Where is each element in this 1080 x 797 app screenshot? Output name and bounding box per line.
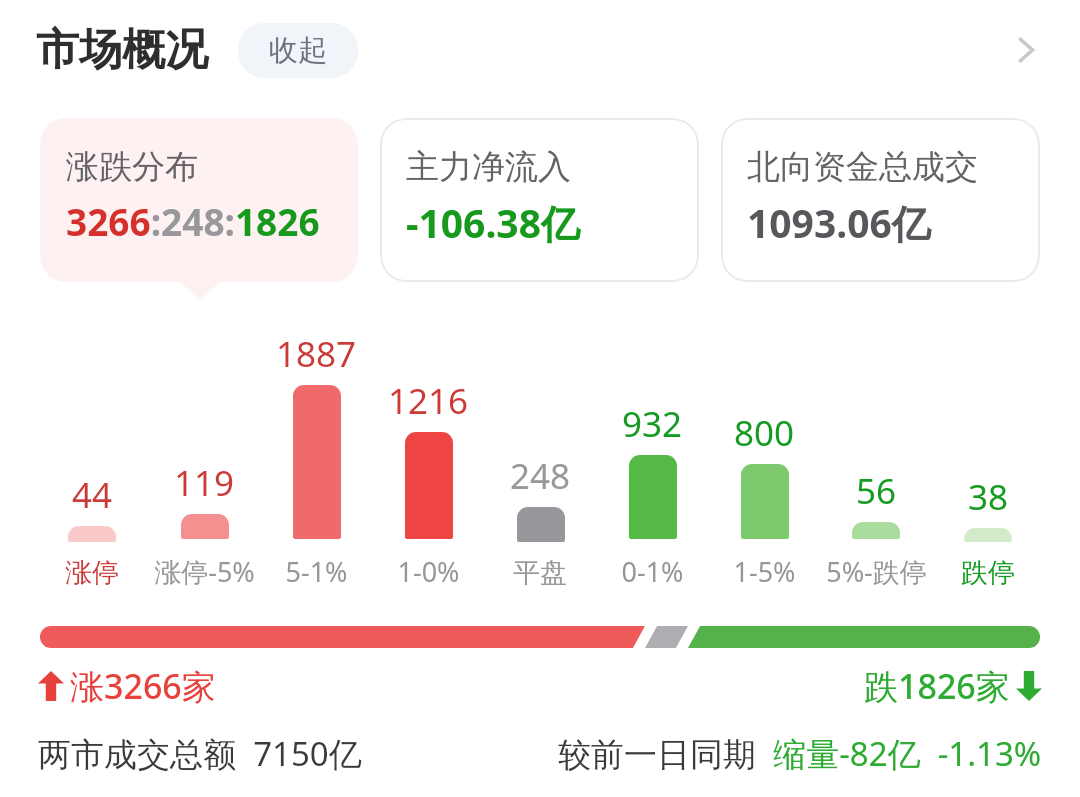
staticText: -106.38亿 — [406, 196, 580, 249]
staticText: 两市成交总额 7150亿 — [38, 731, 362, 776]
staticText: 跌停 — [961, 556, 1015, 590]
staticText: 1-5% — [733, 553, 796, 590]
staticText: 44 — [72, 471, 113, 519]
staticText: 市场概况 — [36, 23, 208, 77]
staticText: 涨停-5% — [154, 553, 255, 590]
staticText: 56 — [856, 467, 897, 515]
staticText: 1216 — [388, 377, 469, 425]
staticText: 涨3266家 — [70, 663, 216, 709]
button[interactable]: 北向资金总成交 — [721, 118, 1040, 282]
staticText: 1093.06亿 — [747, 196, 931, 249]
staticText: 248 — [510, 452, 571, 500]
staticText: 3266:248:1826 — [66, 196, 320, 246]
staticText: 38 — [968, 473, 1009, 521]
staticText: 5-1% — [285, 553, 348, 590]
staticText: 收起 — [269, 32, 327, 69]
button[interactable]: More — [998, 22, 1054, 78]
staticText: 932 — [622, 400, 683, 448]
staticText: 涨停 — [65, 556, 119, 590]
staticText: 5%-跌停 — [826, 553, 927, 590]
staticText: 平盘 — [513, 556, 567, 590]
staticText: 800 — [734, 409, 795, 457]
staticText: 1887 — [276, 330, 357, 378]
staticText: 跌1826家 — [864, 663, 1010, 709]
staticText: 北向资金总成交 — [747, 146, 978, 188]
staticText: 涨跌分布 — [66, 146, 198, 188]
button[interactable]: 涨跌分布 — [40, 118, 358, 282]
staticText: 0-1% — [621, 553, 684, 590]
staticText: 较前一日同期 缩量-82亿 -1.13% — [558, 731, 1042, 776]
staticText: 主力净流入 — [406, 146, 571, 188]
button[interactable]: 主力净流入 — [380, 118, 699, 282]
button[interactable]: 收起 — [238, 23, 358, 78]
staticText: 119 — [174, 459, 235, 507]
staticText: 1-0% — [397, 553, 460, 590]
